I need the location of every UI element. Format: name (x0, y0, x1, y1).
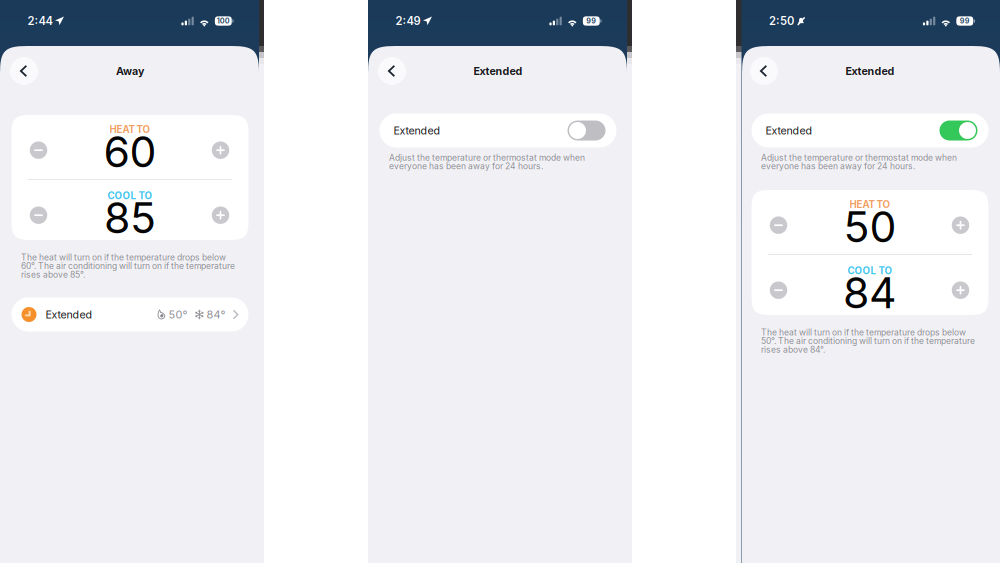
staticText: 50° (169, 308, 188, 321)
staticText: 2:50 (769, 14, 794, 28)
button[interactable]: Decrease (30, 141, 47, 159)
staticText: 84 (843, 267, 897, 319)
button[interactable]: Increase (212, 141, 229, 159)
button[interactable]: Back (10, 57, 38, 85)
staticText: 100 (217, 17, 230, 25)
staticText: 84° (206, 308, 225, 321)
staticText: The heat will turn on if the temperature… (761, 327, 975, 355)
button[interactable]: Increase (952, 216, 969, 234)
staticText: Extended (845, 64, 894, 77)
staticText: Adjust the temperature or thermostat mod… (761, 153, 957, 171)
button[interactable]: Decrease (770, 281, 787, 299)
staticText: COOL TO (847, 265, 892, 276)
staticText: Extended (765, 124, 812, 137)
button[interactable]: Decrease (30, 206, 47, 224)
button[interactable]: Extended (751, 113, 988, 147)
staticText: Extended (393, 124, 440, 137)
button[interactable]: Extended (379, 113, 616, 147)
staticText: Adjust the temperature or thermostat mod… (389, 153, 585, 171)
staticText: 50 (843, 201, 896, 252)
button[interactable]: Extended (939, 120, 977, 140)
button[interactable]: Back (750, 57, 778, 85)
button[interactable]: Increase (952, 281, 969, 299)
staticText: 99 (960, 17, 970, 25)
staticText: 2:44 (27, 14, 52, 28)
staticText: The heat will turn on if the temperature… (21, 252, 235, 280)
staticText: HEAT TO (109, 124, 150, 135)
staticText: COOL TO (107, 190, 152, 201)
button[interactable]: Decrease (770, 216, 787, 234)
staticText: Extended (473, 64, 522, 77)
staticText: Extended (45, 308, 92, 321)
staticText: HEAT TO (849, 199, 890, 210)
staticText: 85 (104, 192, 156, 244)
button[interactable]: Back (378, 57, 406, 85)
button[interactable]: Extended (567, 120, 605, 140)
staticText: 60 (103, 126, 156, 177)
staticText: 2:49 (395, 14, 420, 28)
staticText: Away (116, 64, 144, 77)
button[interactable]: Increase (212, 206, 229, 224)
button[interactable]: Extended (11, 297, 248, 331)
staticText: 99 (586, 17, 596, 25)
